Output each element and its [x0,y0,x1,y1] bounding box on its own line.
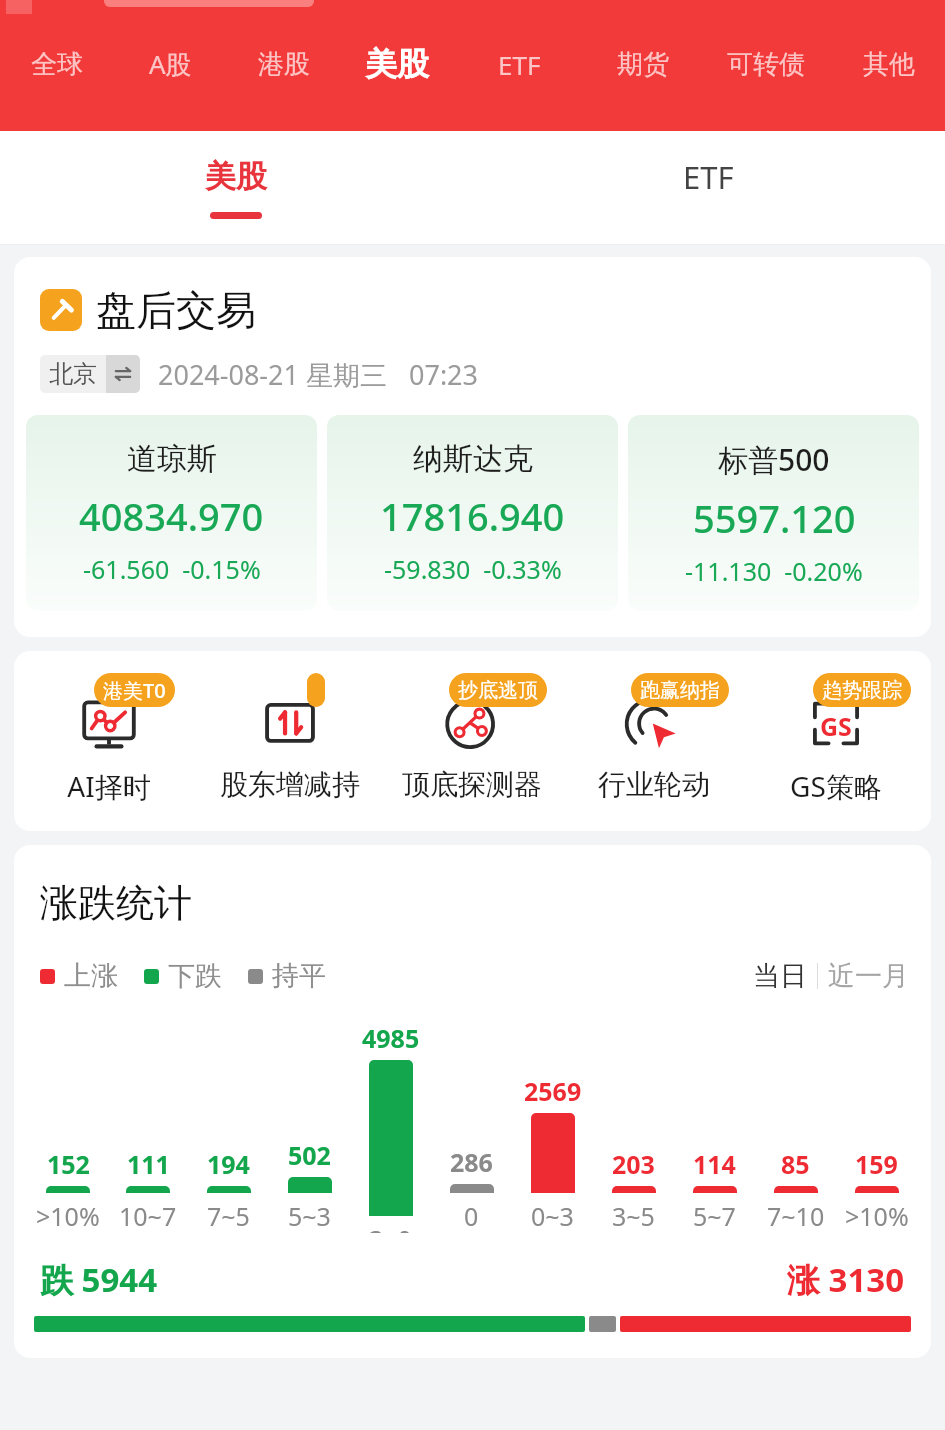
staticText: 111 [127,1147,170,1181]
button[interactable]: ETF [472,131,945,245]
staticText: 抄底逃顶 [458,678,538,703]
staticText: 10~7 [119,1199,177,1233]
button[interactable]: 全球 [0,34,114,94]
staticText: GS策略 [790,767,882,805]
staticText: 3~5 [612,1199,655,1233]
staticText: 行业轮动 [598,767,710,802]
staticText: 07:23 [409,356,479,393]
staticText: GS [820,709,852,743]
staticText: 0~3 [531,1199,574,1233]
staticText: 上涨 [64,959,118,993]
staticText: 可转债 [727,48,805,81]
staticText: 美股 [365,44,429,84]
staticText: 道琼斯 [127,440,217,478]
staticText: AI择时 [67,767,151,805]
staticText: 跑赢纳指 [640,678,720,703]
button[interactable]: 股东增减持 [199,673,381,802]
staticText: 85 [781,1147,810,1181]
staticText: 趋势跟踪 [822,678,902,703]
staticText: -11.130 -0.20% [685,554,863,588]
button[interactable]: GS策略 [745,673,927,805]
button[interactable]: 纳斯达克 [327,415,618,611]
button[interactable]: 当日 [753,959,807,993]
staticText: 5~3 [288,1199,331,1233]
staticText: 当日 [753,959,807,993]
staticText: 0 [464,1199,479,1233]
staticText: 2024-08-21 星期三 [158,356,387,393]
staticText: 全球 [31,48,83,81]
staticText: 286 [450,1145,493,1179]
staticText: 7~5 [207,1199,250,1233]
staticText: 美股 [205,157,267,196]
button[interactable]: 北京 [40,355,140,393]
staticText: -61.560 -0.15% [83,552,261,586]
staticText: 港美T0 [103,677,166,704]
staticText: 3~0 [369,1222,412,1233]
staticText: >10% [845,1199,909,1233]
staticText: 期货 [617,48,669,81]
button[interactable]: 顶底探测器 [381,673,563,802]
staticText: 2569 [524,1074,582,1108]
staticText: 4985 [362,1021,420,1055]
staticText: 203 [612,1147,655,1181]
staticText: 194 [207,1147,250,1181]
button[interactable]: 港股 [227,34,340,94]
button[interactable]: 道琼斯 [26,415,317,611]
staticText: A股 [149,46,192,82]
button[interactable]: 美股 [340,34,453,94]
button[interactable]: 可转债 [699,34,832,94]
staticText: -59.830 -0.33% [384,552,562,586]
staticText: 标普500 [718,439,830,480]
staticText: 涨跌统计 [40,879,192,927]
staticText: 盘后交易 [96,285,256,335]
button[interactable]: A股 [114,34,227,94]
staticText: 502 [288,1138,331,1172]
button[interactable]: 期货 [586,34,699,94]
staticText: 顶底探测器 [402,767,542,802]
button[interactable]: 其他 [832,34,945,94]
staticText: 其他 [863,48,915,81]
button[interactable]: 近一月 [828,959,909,993]
staticText: 跌 5944 [40,1257,158,1302]
staticText: 40834.970 [79,490,264,542]
button[interactable]: AI择时 [18,673,199,805]
staticText: 港股 [258,48,310,81]
staticText: 北京 [49,359,97,389]
button[interactable]: ETF [453,34,586,94]
staticText: 17816.940 [380,490,565,542]
staticText: ETF [498,47,541,82]
button[interactable]: 行业轮动 [563,673,745,802]
staticText: 5~7 [693,1199,736,1233]
staticText: 涨 3130 [787,1257,905,1302]
staticText: 7~10 [767,1199,825,1233]
staticText: 股东增减持 [220,767,360,802]
button[interactable]: 美股 [0,131,472,245]
staticText: 下跌 [168,959,222,993]
staticText: 152 [47,1147,90,1181]
staticText: 114 [693,1147,736,1181]
staticText: 近一月 [828,959,909,993]
staticText: ETF [683,156,734,198]
staticText: >10% [36,1199,100,1233]
staticText: 5597.120 [693,492,856,544]
staticText: 159 [855,1147,898,1181]
button[interactable]: 标普500 [628,415,919,611]
staticText: 持平 [272,959,326,993]
staticText: 纳斯达克 [413,440,533,478]
